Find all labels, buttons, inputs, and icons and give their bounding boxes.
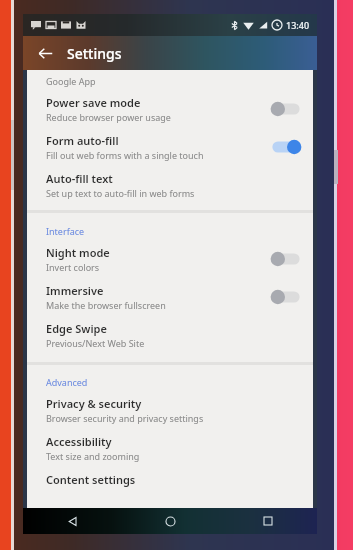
staticText: Privacy & security	[46, 396, 142, 411]
button[interactable]: Toggle off	[269, 99, 303, 119]
staticText: Make the browser fullscreen	[46, 299, 166, 311]
button[interactable]: Form auto-fill	[27, 128, 313, 166]
button[interactable]: Privacy & security	[27, 391, 313, 429]
staticText: Edge Swipe	[46, 321, 107, 336]
button[interactable]: Toggle off	[269, 249, 303, 269]
staticText: Invert colors	[46, 261, 100, 273]
staticText: Content settings	[46, 472, 136, 487]
button[interactable]: Toggle on	[269, 137, 303, 157]
button[interactable]: Edge Swipe	[27, 316, 313, 354]
staticText: Night mode	[46, 245, 110, 260]
staticText: Previous/Next Web Site	[46, 337, 145, 349]
staticText: Text size and zooming	[46, 450, 140, 462]
button[interactable]: Night mode	[27, 240, 313, 278]
staticText: Auto-fill text	[46, 171, 113, 186]
staticText: Accessibility	[46, 434, 112, 449]
staticText: Immersive	[46, 283, 104, 298]
staticText: Interface	[46, 225, 85, 237]
button[interactable]: Recent apps	[219, 508, 317, 534]
staticText: Power save mode	[46, 95, 141, 110]
button[interactable]: Back	[31, 39, 59, 67]
staticText: Browser security and privacy settings	[46, 412, 204, 424]
button[interactable]: Home	[121, 508, 219, 534]
staticText: Form auto-fill	[46, 133, 119, 148]
button[interactable]: Accessibility	[27, 429, 313, 467]
staticText: Fill out web forms with a single touch	[46, 149, 204, 161]
staticText: Set up text to auto-fill in web forms	[46, 187, 195, 199]
button[interactable]: Power save mode	[27, 90, 313, 128]
button[interactable]: Content settings	[27, 467, 313, 492]
staticText: 13:40	[286, 19, 310, 31]
button[interactable]: Toggle off	[269, 287, 303, 307]
staticText: Advanced	[46, 376, 88, 388]
button[interactable]: Immersive	[27, 278, 313, 316]
button[interactable]: Back	[23, 508, 121, 534]
staticText: Google App	[46, 75, 96, 87]
staticText: Reduce browser power usage	[46, 111, 171, 123]
staticText: Settings	[67, 44, 122, 63]
button[interactable]: Auto-fill text	[27, 166, 313, 204]
